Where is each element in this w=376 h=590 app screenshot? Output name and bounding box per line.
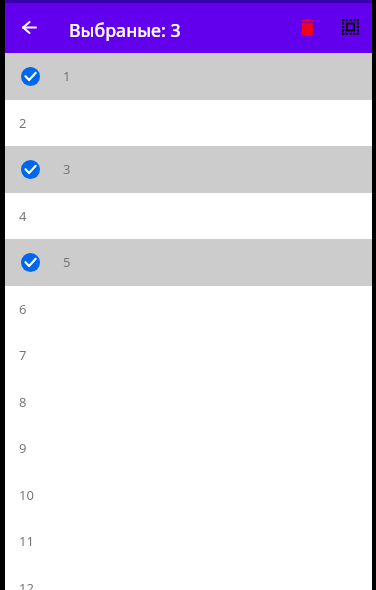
button[interactable]: 1 <box>5 53 372 100</box>
button[interactable]: 11 <box>5 518 372 565</box>
staticText: 2 <box>19 114 27 132</box>
staticText: 5 <box>63 253 71 271</box>
staticText: 9 <box>19 439 27 457</box>
button[interactable]: 12 <box>5 565 372 590</box>
button[interactable]: 10 <box>5 472 372 519</box>
button[interactable]: Delete <box>287 6 329 48</box>
button[interactable]: 9 <box>5 425 372 472</box>
staticText: 12 <box>19 579 34 590</box>
button[interactable]: Select all <box>334 6 376 48</box>
staticText: 1 <box>63 67 71 85</box>
staticText: 7 <box>19 346 27 364</box>
button[interactable]: 4 <box>5 193 372 240</box>
staticText: 6 <box>19 300 27 318</box>
staticText: 10 <box>19 486 34 504</box>
button[interactable]: 6 <box>5 286 372 333</box>
staticText: 3 <box>63 160 71 178</box>
button[interactable]: 7 <box>5 332 372 379</box>
button[interactable]: 2 <box>5 100 372 147</box>
staticText: 4 <box>19 207 27 225</box>
button[interactable]: 5 <box>5 239 372 286</box>
staticText: Выбраные: 3 <box>69 18 181 42</box>
staticText: 11 <box>19 532 34 550</box>
button[interactable]: 8 <box>5 379 372 426</box>
button[interactable]: Back <box>12 6 54 48</box>
button[interactable]: 3 <box>5 146 372 193</box>
staticText: 8 <box>19 393 27 411</box>
